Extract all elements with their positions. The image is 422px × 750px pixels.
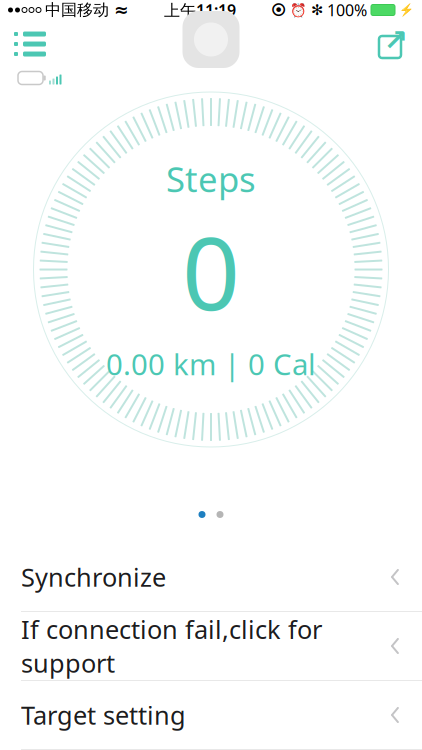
- staticText: 100%: [327, 0, 367, 21]
- staticText: Steps: [166, 156, 256, 202]
- button[interactable]: Target setting: [0, 681, 422, 749]
- staticText: ✻: [311, 2, 323, 18]
- staticText: 0.00 km | 0 Cal: [106, 344, 316, 383]
- staticText: ⦿: [271, 3, 286, 17]
- button[interactable]: Menu: [8, 22, 52, 66]
- staticText: Target setting: [21, 698, 186, 732]
- staticText: ⚡: [399, 3, 414, 17]
- staticText: 0: [182, 204, 240, 338]
- staticText: ↗: [383, 23, 408, 57]
- staticText: Synchronize: [21, 560, 166, 594]
- staticText: ⏰: [290, 2, 307, 18]
- staticText: 中国移动: [45, 0, 109, 20]
- button[interactable]: If connection fail,click for support: [0, 612, 422, 680]
- button[interactable]: Synchronize: [0, 543, 422, 611]
- staticText: 上午11:19: [164, 0, 236, 21]
- staticText: ≈: [114, 0, 129, 20]
- button[interactable]: Share: [370, 22, 414, 66]
- staticText: If connection fail,click for support: [21, 612, 322, 680]
